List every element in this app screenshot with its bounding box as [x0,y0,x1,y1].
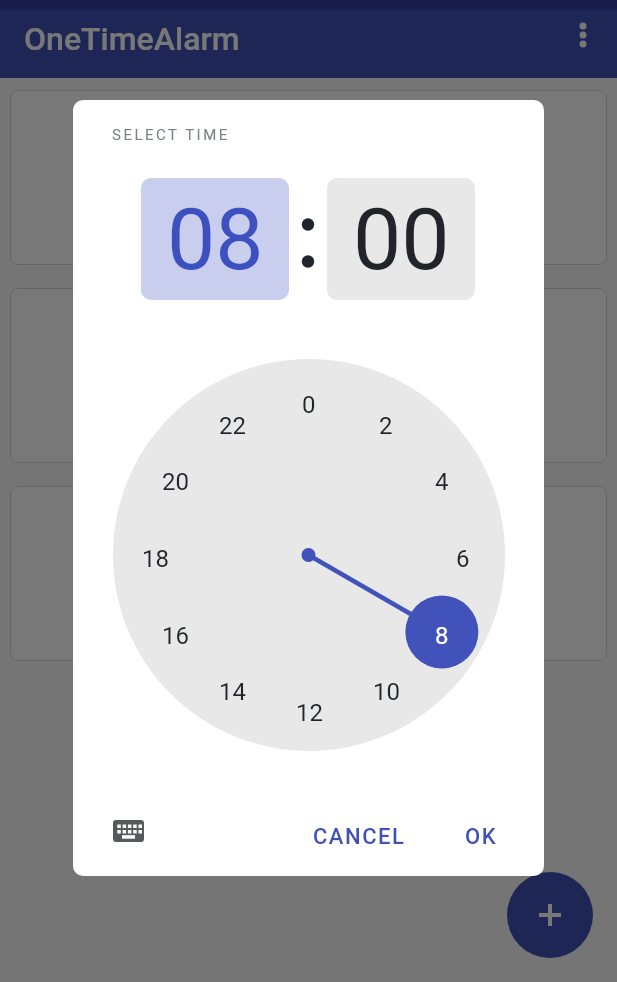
button[interactable] [507,872,593,958]
button[interactable] [103,809,153,853]
button[interactable]: 16 [150,611,200,661]
staticText: 4 [435,468,449,496]
staticText: 6 [456,545,470,573]
button[interactable] [10,288,607,463]
staticText: SELECT TIME [112,126,230,144]
staticText: 12 [296,699,323,727]
button[interactable]: 10 [361,667,411,717]
button[interactable]: CANCEL [286,809,433,865]
button[interactable]: 0 [284,380,334,430]
staticText: OK [465,824,498,850]
staticText: 0 [302,391,316,419]
staticText: 8 [435,622,449,650]
staticText: 18 [142,545,169,573]
staticText: 20 [162,468,189,496]
button[interactable]: 08 [141,178,289,300]
button[interactable]: 6 [438,534,488,584]
staticText: 08 [167,189,264,290]
button[interactable] [10,90,607,265]
button[interactable] [10,486,607,661]
staticText: CANCEL [313,824,406,850]
button[interactable]: OK [441,809,521,865]
staticText: 2 [379,412,393,440]
button[interactable]: 2 [361,401,411,451]
staticText: 22 [219,412,246,440]
button[interactable]: 18 [130,534,180,584]
button[interactable] [561,13,605,57]
staticText: OneTimeAlarm [24,20,240,58]
staticText: 14 [219,678,246,706]
button[interactable]: 00 [327,178,475,300]
button[interactable]: 20 [150,457,200,507]
staticText: 16 [162,622,189,650]
button[interactable]: 8 [417,611,467,661]
button[interactable]: 14 [207,667,257,717]
staticText: 10 [373,678,400,706]
button[interactable]: 4 [417,457,467,507]
button[interactable]: 22 [207,401,257,451]
button[interactable]: 12 [284,688,334,738]
staticText: 00 [353,189,450,290]
